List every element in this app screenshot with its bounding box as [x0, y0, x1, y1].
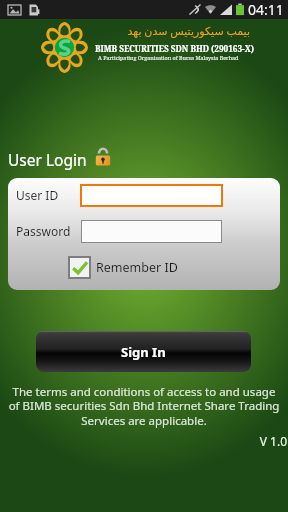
- button[interactable]: Remember ID: [68, 256, 178, 279]
- staticText: User ID: [16, 187, 59, 203]
- staticText: بيمب سيكوريتيس سدن بهد: [95, 23, 250, 38]
- staticText: BIMB SECURITIES SDN BHD (290163-X): [95, 43, 254, 54]
- button[interactable]: [81, 220, 222, 243]
- staticText: 04:11: [248, 0, 284, 19]
- staticText: Remember ID: [96, 259, 178, 276]
- staticText: Sign In: [121, 343, 166, 361]
- staticText: A Participating Organisation of Bursa Ma…: [98, 54, 239, 61]
- staticText: Password: [16, 223, 71, 239]
- staticText: User Login: [8, 149, 87, 170]
- button[interactable]: Sign In: [36, 331, 251, 372]
- staticText: The terms and conditions of access to an…: [8, 384, 280, 429]
- button[interactable]: [80, 184, 223, 207]
- staticText: V 1.0: [0, 433, 287, 449]
